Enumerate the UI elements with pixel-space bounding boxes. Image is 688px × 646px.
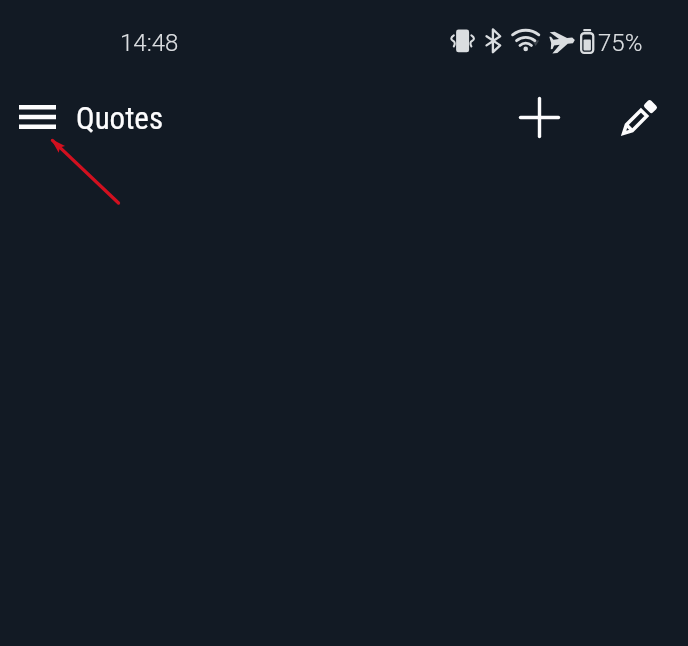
button[interactable]: Edit	[611, 92, 665, 146]
staticText: 75%	[598, 29, 643, 57]
button[interactable]: Open navigation menu	[9, 92, 65, 142]
staticText: 14:48	[120, 29, 179, 57]
button[interactable]: Add quote	[513, 91, 565, 143]
staticText: Quotes	[76, 100, 164, 136]
